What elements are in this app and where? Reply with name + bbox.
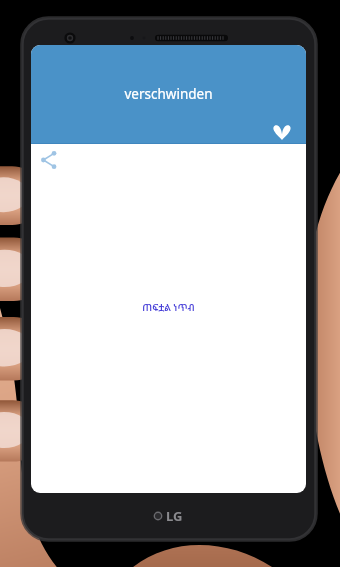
staticText: LG — [166, 507, 183, 525]
button[interactable]: Favourite — [269, 116, 295, 142]
button[interactable]: ጠፍቷል ነጥብ — [31, 301, 306, 317]
button[interactable]: Share — [35, 146, 63, 174]
staticText: verschwinden — [31, 85, 306, 105]
